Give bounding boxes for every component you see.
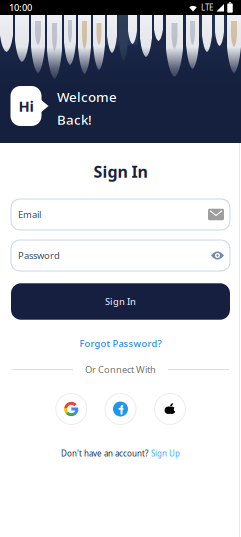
button[interactable] (105, 393, 136, 424)
staticText: 10:00 (9, 1, 32, 14)
staticText: Sign In (93, 161, 147, 182)
staticText: LTE (201, 2, 213, 13)
staticText: Forgot Password? (79, 337, 161, 350)
staticText: Or Connect With (85, 363, 156, 376)
button[interactable]: Sign In (11, 283, 230, 320)
button[interactable]: Don't have an account? (59, 446, 182, 461)
button[interactable]: Forgot Password? (77, 335, 163, 352)
staticText: Hi (18, 96, 33, 116)
staticText: Don't have an account? (61, 448, 148, 459)
staticText: Sign Up (151, 448, 180, 459)
staticText: Email (18, 208, 41, 221)
button[interactable] (154, 393, 185, 424)
button[interactable]: Email (11, 199, 230, 230)
staticText: Back! (57, 111, 92, 128)
staticText: Password (18, 249, 60, 262)
staticText: Welcome (57, 88, 117, 106)
button[interactable]: Password (11, 240, 230, 271)
staticText: Sign In (105, 295, 136, 308)
button[interactable] (56, 393, 87, 424)
